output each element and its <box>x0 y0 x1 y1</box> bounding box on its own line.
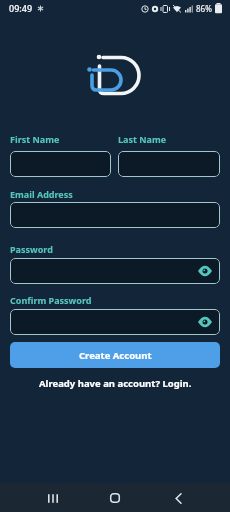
staticText: 86% <box>196 3 212 14</box>
staticText: Last Name <box>118 133 167 145</box>
staticText: First Name <box>10 133 60 145</box>
staticText: 09:49 <box>9 2 33 14</box>
staticText: Email Address <box>10 188 73 200</box>
button[interactable] <box>10 258 220 284</box>
button[interactable] <box>10 151 111 177</box>
button[interactable]: Create Account <box>10 342 220 368</box>
button[interactable] <box>118 151 220 177</box>
staticText: Confirm Password <box>10 294 92 306</box>
button[interactable] <box>168 488 188 508</box>
staticText: Create Account <box>79 349 152 362</box>
button[interactable]: Already have an account? Login. <box>10 377 220 390</box>
staticText: Already have an account? Login. <box>39 377 192 390</box>
button[interactable] <box>10 202 220 228</box>
button[interactable] <box>43 488 63 508</box>
button[interactable] <box>10 309 220 335</box>
staticText: Password <box>10 243 53 255</box>
button[interactable] <box>105 488 125 508</box>
